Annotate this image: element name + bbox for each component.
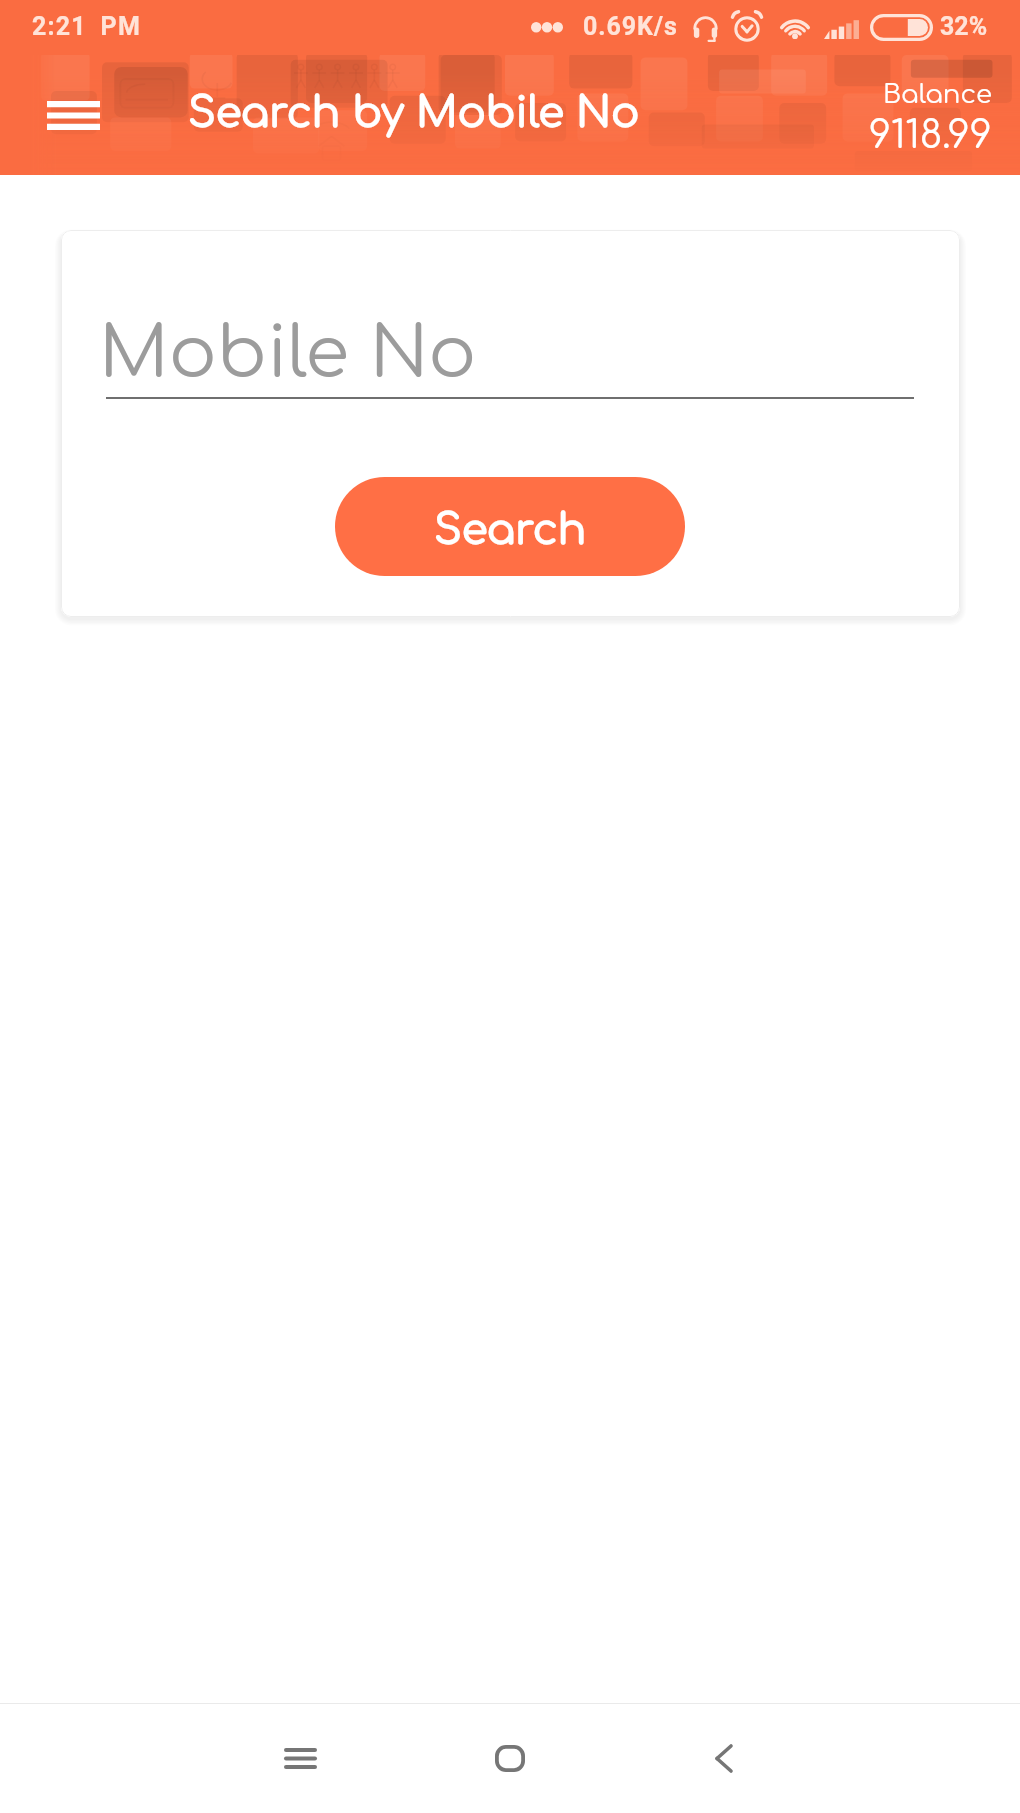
- staticText: 0.69K/s: [583, 12, 678, 41]
- staticText: 9118.99: [869, 115, 992, 157]
- staticText: Balance: [883, 80, 992, 109]
- staticText: Mobile No: [99, 314, 477, 393]
- button[interactable]: Recent apps: [230, 1716, 370, 1801]
- staticText: 32%: [940, 12, 988, 41]
- button[interactable]: Home: [440, 1716, 580, 1801]
- button[interactable]: Back: [654, 1716, 794, 1801]
- staticText: Search by Mobile No: [188, 90, 640, 137]
- button[interactable]: Open navigation menu: [22, 72, 124, 158]
- button[interactable]: Search: [335, 477, 685, 576]
- staticText: Search: [434, 507, 587, 554]
- button[interactable]: Mobile No: [106, 282, 914, 399]
- staticText: 2:21 PM: [32, 12, 142, 41]
